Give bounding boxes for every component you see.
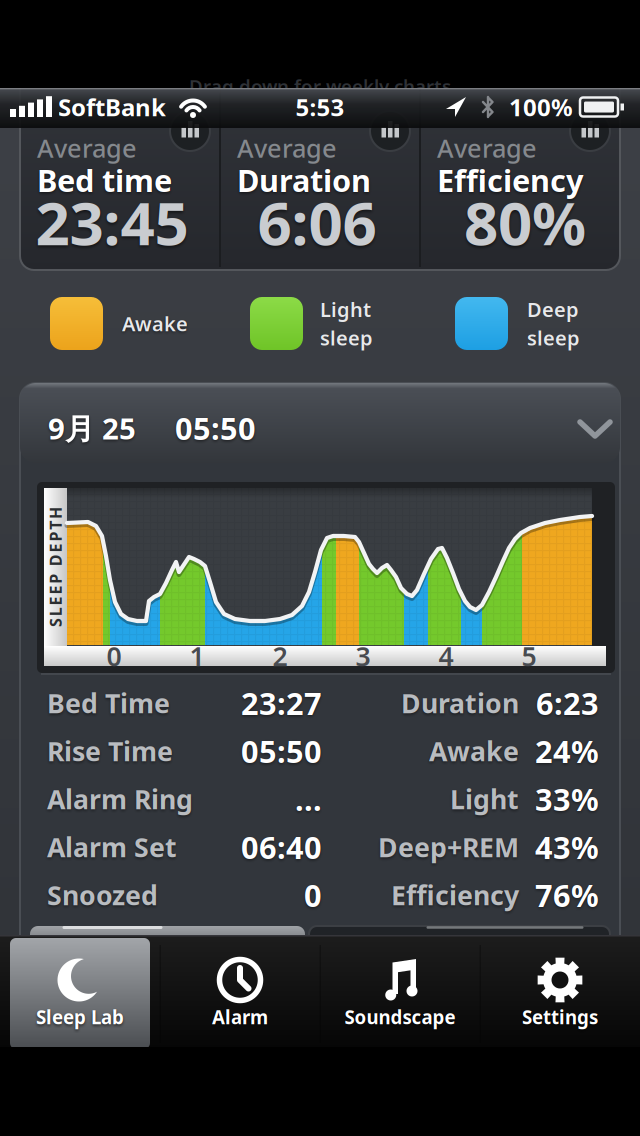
staticText: Light sleep: [320, 296, 373, 351]
button[interactable]: Alarm: [160, 935, 320, 1047]
staticText: Snoozed: [47, 877, 158, 913]
button[interactable]: Left action: [30, 926, 305, 952]
button[interactable]: Show chart: [370, 111, 410, 151]
staticText: 3: [355, 638, 370, 674]
staticText: Awake: [122, 310, 188, 337]
staticText: Average: [237, 131, 337, 165]
staticText: 100%: [509, 91, 573, 123]
staticText: Bed time: [37, 160, 172, 200]
staticText: 05:50: [175, 408, 256, 448]
staticText: Sleep Lab: [36, 1005, 124, 1029]
button[interactable]: Right action: [309, 926, 610, 952]
staticText: Bed Time: [47, 685, 170, 721]
staticText: Drag down for weekly charts: [189, 74, 451, 98]
staticText: Alarm Set: [47, 829, 177, 865]
staticText: 80%: [464, 182, 586, 262]
staticText: 0: [304, 875, 322, 915]
staticText: Efficiency: [391, 877, 519, 913]
staticText: 76%: [535, 875, 599, 915]
staticText: 24%: [535, 731, 599, 771]
button[interactable]: Show chart: [570, 111, 610, 151]
staticText: ...: [295, 779, 322, 819]
staticText: Soundscape: [344, 1005, 455, 1029]
staticText: Deep sleep: [527, 296, 580, 351]
staticText: Duration: [401, 685, 519, 721]
button[interactable]: Soundscape: [320, 935, 480, 1047]
staticText: 06:40: [241, 827, 322, 867]
button[interactable]: Settings: [480, 935, 640, 1047]
staticText: Settings: [522, 1005, 598, 1029]
staticText: Alarm Ring: [47, 781, 193, 817]
staticText: Average: [37, 131, 137, 165]
staticText: 0: [106, 638, 121, 674]
button[interactable]: Show chart: [170, 111, 210, 151]
staticText: SLEEP DEPTH: [0, 556, 115, 578]
staticText: 1: [189, 638, 204, 674]
staticText: Rise Time: [47, 733, 173, 769]
staticText: 6:23: [536, 683, 599, 723]
staticText: 5: [521, 638, 536, 674]
staticText: Alarm: [212, 1005, 268, 1029]
staticText: 23:45: [35, 182, 188, 262]
staticText: 43%: [535, 827, 599, 867]
staticText: 05:50: [241, 731, 322, 771]
staticText: Efficiency: [437, 160, 584, 200]
button[interactable]: Sleep Lab: [0, 935, 160, 1047]
staticText: 23:27: [241, 683, 322, 723]
staticText: 4: [438, 638, 453, 674]
staticText: Awake: [429, 733, 519, 769]
button[interactable]: Toggle day details: [20, 383, 620, 463]
staticText: 2: [272, 638, 287, 674]
staticText: Deep+REM: [378, 829, 519, 865]
staticText: 6:06: [257, 182, 376, 262]
staticText: Average: [437, 131, 537, 165]
staticText: 33%: [535, 779, 599, 819]
staticText: Light: [450, 781, 519, 817]
staticText: SoftBank: [58, 91, 166, 123]
staticText: 5:53: [295, 91, 344, 123]
staticText: 9月 25: [48, 408, 136, 447]
staticText: Duration: [237, 160, 371, 200]
